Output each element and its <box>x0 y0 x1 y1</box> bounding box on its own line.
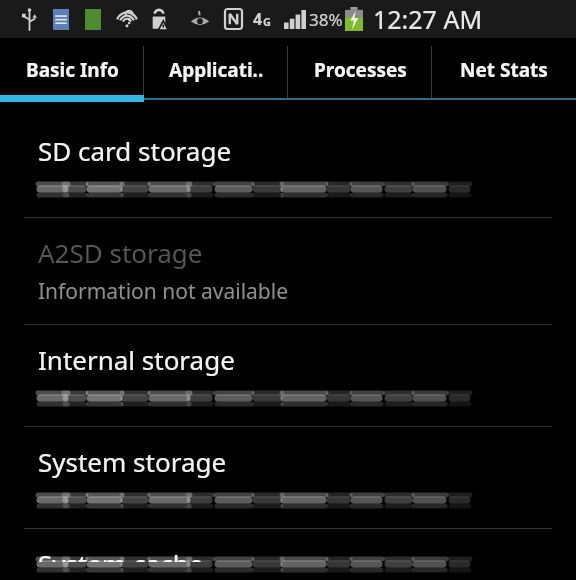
staticText: 4 <box>253 8 263 30</box>
button[interactable]: System cache <box>0 529 576 580</box>
staticText: A2SD storage <box>38 235 203 270</box>
button[interactable]: Basic Info <box>0 38 144 116</box>
staticText: Information not available <box>38 277 289 306</box>
staticText: SD card storage <box>38 133 232 168</box>
button[interactable]: Net Stats <box>432 38 576 116</box>
staticText: System storage <box>38 444 227 479</box>
staticText: System cache <box>38 546 204 562</box>
staticText: Internal storage <box>38 342 235 377</box>
staticText: Net Stats <box>460 57 548 83</box>
staticText: G <box>263 14 271 29</box>
button[interactable]: Internal storage <box>0 325 576 426</box>
button[interactable]: A2SD storage <box>0 218 576 324</box>
staticText: Basic Info <box>26 57 119 83</box>
button[interactable]: System storage <box>0 427 576 528</box>
staticText: 38% <box>309 8 343 31</box>
staticText: 12:27 AM <box>373 2 483 36</box>
staticText: Processes <box>314 57 407 83</box>
button[interactable]: SD card storage <box>0 116 576 217</box>
button[interactable]: Applicati.. <box>144 38 288 116</box>
staticText: Applicati.. <box>169 57 264 83</box>
button[interactable]: Processes <box>288 38 432 116</box>
